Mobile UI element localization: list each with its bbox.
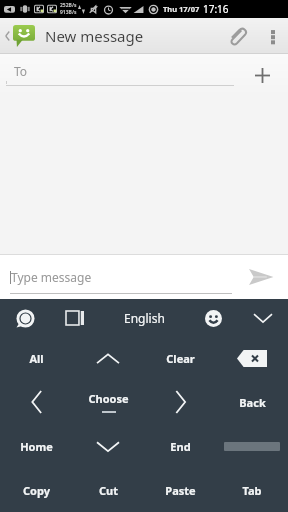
staticText: 17:16	[203, 2, 229, 16]
button[interactable]: Space	[216, 424, 288, 468]
staticText: Clear	[166, 351, 195, 366]
staticText: End	[170, 439, 191, 454]
button[interactable]: To	[6, 63, 242, 86]
button[interactable]: Tab	[216, 468, 288, 512]
button[interactable]: Emoji	[188, 299, 238, 337]
button[interactable]: English	[112, 304, 177, 332]
button[interactable]: Cut	[72, 468, 144, 512]
staticText: Choose	[88, 391, 129, 406]
button[interactable]: More options	[258, 18, 288, 54]
button[interactable]: Up	[72, 337, 144, 380]
staticText: Paste	[165, 483, 196, 498]
staticText: Tab	[242, 483, 262, 498]
button[interactable]: Choose	[72, 380, 144, 424]
staticText: New message	[45, 26, 144, 46]
button[interactable]: Backspace	[216, 337, 288, 380]
button[interactable]: Keyboard layout	[50, 299, 100, 337]
button[interactable]: Clear	[144, 337, 216, 380]
button[interactable]: Down	[72, 424, 144, 468]
staticText: To	[14, 63, 28, 79]
staticText: Back	[239, 395, 266, 410]
button[interactable]: Hide keyboard	[238, 299, 288, 337]
button[interactable]: Attach	[216, 18, 258, 54]
button[interactable]: Home	[0, 424, 72, 468]
button[interactable]: All	[0, 337, 72, 380]
staticText: Copy	[23, 483, 50, 498]
staticText: All	[29, 351, 44, 366]
button[interactable]: Type message	[10, 269, 232, 285]
staticText: 913B/s	[60, 9, 77, 16]
staticText: Cut	[99, 483, 118, 498]
button[interactable]: Send	[238, 254, 284, 299]
staticText: Home	[20, 439, 53, 454]
button[interactable]: End	[144, 424, 216, 468]
button[interactable]: Navigate up	[0, 18, 39, 54]
staticText: English	[124, 310, 165, 326]
button[interactable]: Left	[0, 380, 72, 424]
button[interactable]: Paste	[144, 468, 216, 512]
staticText: 252B/s	[60, 2, 77, 9]
button[interactable]: Add recipient	[242, 55, 282, 95]
button[interactable]: Right	[144, 380, 216, 424]
staticText: Thu 17/07	[163, 4, 200, 14]
staticText: Type message	[11, 269, 92, 285]
button[interactable]: Back	[216, 380, 288, 424]
button[interactable]: Go	[0, 299, 50, 337]
button[interactable]: Copy	[0, 468, 72, 512]
